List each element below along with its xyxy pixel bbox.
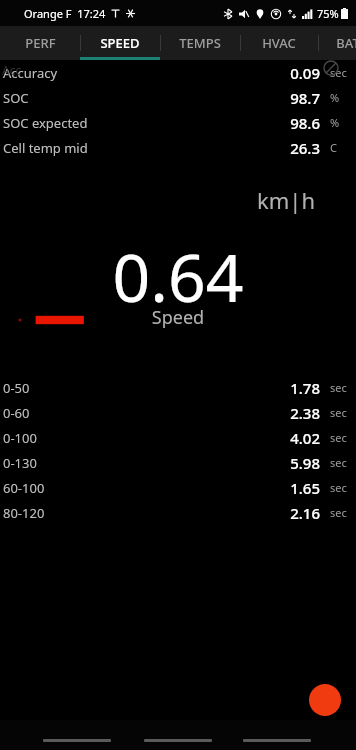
staticText: C [330,140,337,155]
staticText: 0-60 [3,404,30,422]
staticText: 0.09 [248,63,320,83]
button[interactable]: 80-120 [0,500,356,525]
staticText: TEMPS [179,34,221,52]
staticText: Speed [0,305,356,330]
staticText: 26.3 [248,138,320,158]
button[interactable]: PERF [0,26,80,60]
button[interactable]: 0-130 [0,450,356,475]
staticText: 98.6 [248,113,320,133]
staticText: Cell temp mid [3,139,88,157]
button[interactable]: SOC expected [0,110,356,135]
button[interactable]: TEMPS [160,26,240,60]
staticText: sec [330,430,347,445]
staticText: 1.65 [248,478,320,498]
staticText: 0-100 [3,429,37,447]
button[interactable]: Cell temp mid [0,135,356,160]
staticText: SPEED [100,34,140,52]
staticText: PERF [25,34,56,52]
button[interactable]: SPEED [80,26,160,60]
staticText: SOC expected [3,114,88,132]
button[interactable]: Navigation [233,720,321,750]
button[interactable]: 0-60 [0,400,356,425]
staticText: 75% [317,6,339,21]
staticText: sec [330,505,347,520]
staticText: % [330,115,340,130]
staticText: sec [330,455,347,470]
staticText: 5.98 [248,453,320,473]
staticText: 0.64 [0,231,356,321]
staticText: SOC [3,89,29,107]
staticText: HVAC [262,34,296,52]
staticText: 1.78 [248,378,320,398]
staticText: Acc [2,62,22,78]
staticText: 2.16 [248,503,320,523]
button[interactable]: Navigation [33,720,121,750]
staticText: sec [330,405,347,420]
button[interactable]: BAT [308,26,356,60]
staticText: % [330,90,340,105]
button[interactable]: HVAC [239,26,319,60]
button[interactable]: Record [309,684,341,716]
staticText: sec [330,380,347,395]
staticText: Accuracy [3,64,58,82]
button[interactable]: 0-50 [0,375,356,400]
button[interactable]: Navigation [134,720,222,750]
button[interactable]: 0-100 [0,425,356,450]
staticText: 4.02 [248,428,320,448]
staticText: 98.7 [248,88,320,108]
staticText: sec [330,480,347,495]
button[interactable]: SOC [0,85,356,110]
staticText: km|h [257,185,316,215]
staticText: 0-130 [3,454,37,472]
staticText: 60-100 [3,479,45,497]
staticText: 2.38 [248,403,320,423]
staticText: sec [330,65,347,80]
button[interactable]: Accuracy [0,60,356,85]
button[interactable]: 60-100 [0,475,356,500]
staticText: Orange F 17:24 [24,6,106,21]
staticText: BAT [336,34,356,52]
staticText: 0-50 [3,379,30,397]
staticText: 80-120 [3,504,45,522]
